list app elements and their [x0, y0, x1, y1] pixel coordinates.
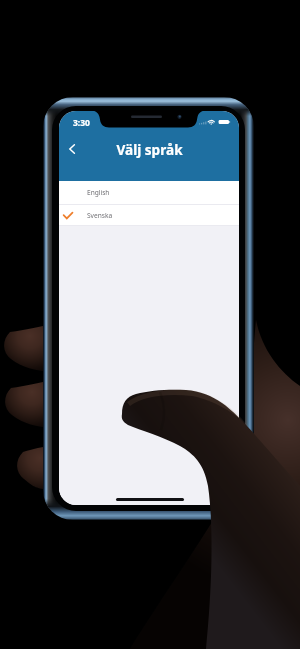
button[interactable]: Back	[59, 129, 85, 169]
button[interactable]: Svenska	[59, 205, 239, 225]
staticText: English	[87, 188, 110, 197]
staticText: Svenska	[87, 211, 113, 220]
button[interactable]: English	[59, 181, 239, 204]
staticText: Välj språk	[116, 140, 183, 159]
staticText: 3:30	[73, 117, 90, 129]
